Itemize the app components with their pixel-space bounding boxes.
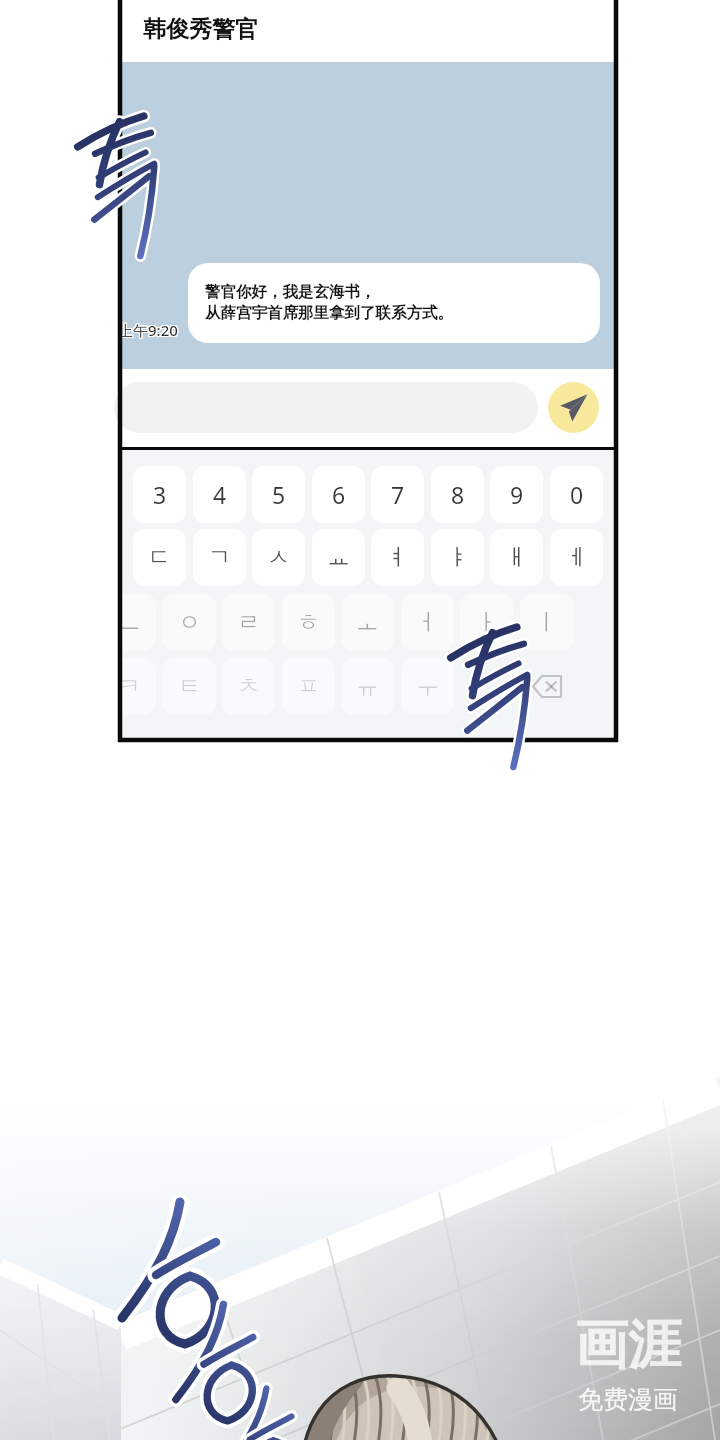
staticText: ㅐ xyxy=(505,543,528,572)
button[interactable]: ㅍ xyxy=(282,658,335,715)
button[interactable]: Backspace xyxy=(520,658,573,715)
staticText: 0 xyxy=(570,479,584,510)
staticText: 上午9:20 xyxy=(118,320,178,340)
staticText: 5 xyxy=(272,479,286,510)
staticText: ㅗ xyxy=(356,608,379,637)
staticText: ㄹ xyxy=(237,608,260,637)
button[interactable]: 0 xyxy=(550,466,603,523)
button[interactable]: ㅅ xyxy=(252,529,305,586)
staticText: 6 xyxy=(332,479,346,510)
button[interactable]: 5 xyxy=(252,466,305,523)
button[interactable]: ㅇ xyxy=(163,594,216,651)
button[interactable]: 3 xyxy=(133,466,186,523)
button[interactable]: ㄱ xyxy=(193,529,246,586)
staticText: ㅛ xyxy=(327,543,350,572)
staticText: ㅅ xyxy=(267,543,290,572)
staticText: ㄱ xyxy=(208,543,231,572)
staticText: ㅓ xyxy=(416,608,439,637)
staticText: 上午9:20 xyxy=(119,320,179,340)
staticText: 上午9:20 xyxy=(119,319,179,339)
button[interactable]: 7 xyxy=(371,466,424,523)
staticText: 上午9:20 xyxy=(117,321,177,341)
staticText: ㅌ xyxy=(178,672,201,701)
button[interactable]: ㅐ xyxy=(490,529,543,586)
button[interactable]: ㅏ xyxy=(460,594,513,651)
staticText: 上午9:20 xyxy=(118,321,178,341)
staticText: 3 xyxy=(153,479,167,510)
button[interactable]: ㅋ xyxy=(103,658,156,715)
button[interactable]: ㅠ xyxy=(341,658,394,715)
staticText: ㅑ xyxy=(446,543,469,572)
button[interactable]: ㅣ xyxy=(520,594,573,651)
button[interactable]: 8 xyxy=(431,466,484,523)
staticText: ㅇ xyxy=(178,608,201,637)
button[interactable]: 警官你好，我是玄海书， 从薛宫宇首席那里拿到了联系方式。 xyxy=(188,263,600,343)
staticText: ㅜ xyxy=(416,672,439,701)
button[interactable]: ㅔ xyxy=(550,529,603,586)
button[interactable]: ㅗ xyxy=(341,594,394,651)
staticText: 9 xyxy=(510,479,524,510)
staticText: ㅡ xyxy=(118,608,141,637)
staticText: ㅔ xyxy=(565,543,588,572)
button[interactable]: ㅜ xyxy=(401,658,454,715)
button[interactable] xyxy=(114,382,538,433)
button[interactable]: ㅎ xyxy=(282,594,335,651)
button[interactable]: 6 xyxy=(312,466,365,523)
button[interactable]: ㅓ xyxy=(401,594,454,651)
button[interactable]: ㅊ xyxy=(222,658,275,715)
staticText: ㅠ xyxy=(356,672,379,701)
staticText: ㅎ xyxy=(297,608,320,637)
staticText: 画涯 xyxy=(575,1312,681,1379)
button[interactable]: 9 xyxy=(490,466,543,523)
staticText: 上午9:20 xyxy=(117,320,177,340)
staticText: ㅋ xyxy=(118,672,141,701)
button[interactable]: Send message xyxy=(548,382,599,433)
staticText: ㅊ xyxy=(237,672,260,701)
staticText: ㅕ xyxy=(386,543,409,572)
staticText: 上午9:20 xyxy=(118,319,178,339)
staticText: 7 xyxy=(391,479,405,510)
staticText: 上午9:20 xyxy=(119,321,179,341)
button[interactable]: 4 xyxy=(193,466,246,523)
staticText: 警官你好，我是玄海书， 从薛宫宇首席那里拿到了联系方式。 xyxy=(205,282,453,323)
staticText: 上午9:20 xyxy=(117,319,177,339)
button[interactable]: ㅡ xyxy=(103,594,156,651)
staticText: 8 xyxy=(451,479,465,510)
staticText: ㅣ xyxy=(535,608,558,637)
button[interactable]: 韩俊秀警官 xyxy=(143,15,258,44)
button[interactable]: ㅛ xyxy=(312,529,365,586)
staticText: 4 xyxy=(213,479,227,510)
button[interactable]: ㅕ xyxy=(371,529,424,586)
button[interactable]: ㅌ xyxy=(163,658,216,715)
button[interactable]: ㄷ xyxy=(133,529,186,586)
button[interactable]: ㅑ xyxy=(431,529,484,586)
staticText: 免费漫画 xyxy=(578,1384,678,1415)
staticText: ㄷ xyxy=(148,543,171,572)
staticText: ㅍ xyxy=(297,672,320,701)
button[interactable]: ㄹ xyxy=(222,594,275,651)
staticText: ㅏ xyxy=(475,608,498,637)
